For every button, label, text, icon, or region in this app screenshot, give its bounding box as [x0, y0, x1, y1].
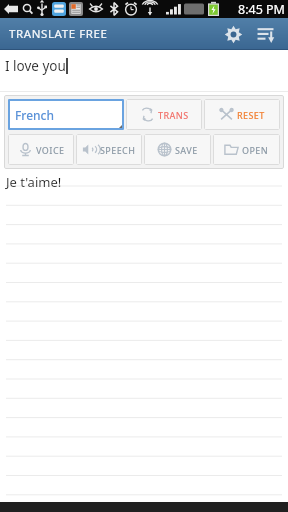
button[interactable]: OPEN: [213, 134, 280, 165]
button[interactable]: VOICE: [8, 134, 74, 165]
button[interactable]: Sort: [250, 19, 280, 49]
button[interactable]: SPEECH: [76, 134, 142, 165]
button[interactable]: RESET: [204, 99, 280, 130]
staticText: 8:45 PM: [238, 1, 285, 18]
staticText: TRANS: [158, 109, 189, 121]
button[interactable]: SAVE: [144, 134, 211, 165]
staticText: SPEECH: [100, 144, 136, 156]
staticText: VOICE: [36, 144, 65, 156]
staticText: SAVE: [175, 144, 198, 156]
staticText: RESET: [237, 109, 265, 121]
staticText: Je t'aime!: [6, 173, 62, 191]
button[interactable]: TRANS: [126, 99, 202, 130]
button[interactable]: French: [8, 99, 124, 130]
staticText: OPEN: [242, 144, 269, 156]
button[interactable]: Settings: [218, 19, 248, 49]
staticText: I love you: [5, 57, 66, 75]
staticText: French: [15, 107, 55, 123]
staticText: TRANSLATE FREE: [9, 26, 108, 42]
